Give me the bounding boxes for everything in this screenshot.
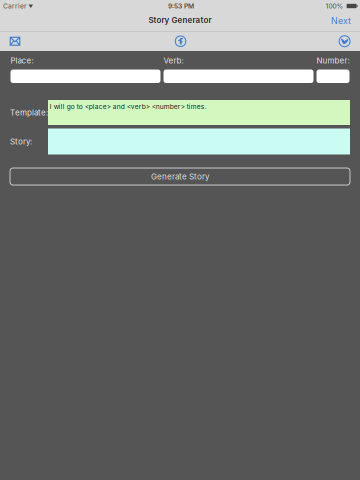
button[interactable]: Story: [48, 128, 350, 154]
button[interactable]: Template: [48, 100, 350, 125]
staticText: Template: [10, 108, 48, 117]
staticText: Generate Story [151, 172, 209, 181]
staticText: I will go to <place> and <verb> <number>… [50, 102, 207, 111]
button[interactable]: Next [328, 12, 354, 30]
button[interactable]: Email [3, 33, 24, 49]
staticText: Story Generator [148, 15, 211, 25]
staticText: Carrier [3, 2, 27, 10]
staticText: Number: [316, 56, 349, 65]
button[interactable]: Share on Twitter [336, 35, 356, 47]
button[interactable]: Share on Facebook [170, 35, 190, 47]
staticText: Next [331, 15, 351, 26]
button[interactable]: Place: [10, 69, 160, 83]
staticText: 100% [325, 2, 343, 10]
button[interactable]: Number: [316, 69, 349, 83]
button[interactable]: Generate Story [10, 168, 350, 185]
staticText: Place: [10, 56, 33, 65]
staticText: Story: [10, 137, 32, 146]
staticText: Verb: [163, 56, 183, 65]
button[interactable]: Verb: [163, 69, 313, 83]
staticText: 9:53 PM [168, 2, 194, 10]
